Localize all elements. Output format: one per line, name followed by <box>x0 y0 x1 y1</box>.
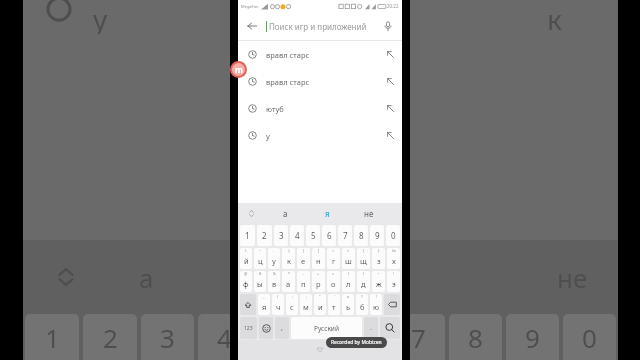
button[interactable]: ! <box>387 271 400 292</box>
button[interactable]: Shift <box>240 294 256 315</box>
staticText: вравл старс <box>266 50 310 60</box>
staticText: т <box>332 302 336 312</box>
button[interactable]: а <box>264 203 306 224</box>
staticText: 2 <box>262 230 267 241</box>
staticText: [ <box>303 248 305 253</box>
button[interactable]: ~ <box>254 248 266 269</box>
staticText: д <box>361 279 366 289</box>
button[interactable]: ! <box>370 294 382 315</box>
button[interactable]: 2 <box>257 225 272 246</box>
staticText: в <box>272 279 277 289</box>
staticText: Русский <box>314 324 339 333</box>
staticText: н <box>316 256 321 266</box>
staticText: й <box>244 256 249 266</box>
button[interactable]: & <box>268 271 280 292</box>
button[interactable]: Emoji <box>259 317 273 339</box>
button[interactable]: 8 <box>354 225 368 246</box>
button[interactable]: = <box>327 271 340 292</box>
staticText: я <box>262 302 267 312</box>
staticText: 5 <box>311 230 316 241</box>
button[interactable]: Search <box>380 317 400 339</box>
button[interactable]: 7 <box>338 225 352 246</box>
button[interactable]: | <box>282 248 295 269</box>
button[interactable]: вравл старс <box>238 41 402 68</box>
staticText: ю <box>373 302 379 312</box>
staticText: м <box>303 302 309 312</box>
button[interactable]: ) <box>357 271 370 292</box>
staticText: с <box>290 302 294 312</box>
button[interactable]: ' <box>328 294 340 315</box>
button[interactable]: 9 <box>370 225 384 246</box>
button[interactable]: ютуб <box>238 95 402 122</box>
staticText: б <box>360 302 365 312</box>
button[interactable]: вравл старс <box>238 68 402 95</box>
button[interactable]: - <box>268 248 280 269</box>
button[interactable]: } <box>372 248 385 269</box>
button[interactable]: . <box>364 317 378 339</box>
button[interactable]: " <box>314 294 326 315</box>
staticText: вравл старс <box>266 77 310 87</box>
button[interactable]: № <box>387 248 400 269</box>
button[interactable]: ] <box>312 248 325 269</box>
staticText: у <box>272 256 276 266</box>
button[interactable]: • <box>372 271 385 292</box>
staticText: " <box>319 294 321 299</box>
button[interactable]: + <box>312 271 325 292</box>
button[interactable]: 0 <box>386 225 400 246</box>
button[interactable]: Voice search <box>374 12 402 40</box>
staticText: и <box>318 302 323 312</box>
staticText: 9 <box>375 230 380 241</box>
button[interactable]: , <box>275 317 289 339</box>
button[interactable]: у <box>238 122 402 149</box>
button[interactable]: ( <box>342 271 355 292</box>
button[interactable]: @ <box>240 271 252 292</box>
button[interactable]: * <box>282 271 295 292</box>
button[interactable]: 4 <box>290 225 304 246</box>
button[interactable]: # <box>254 271 266 292</box>
button[interactable]: < <box>327 248 340 269</box>
button[interactable]: Back <box>310 340 330 360</box>
staticText: к <box>287 256 291 266</box>
staticText: ! <box>393 271 394 276</box>
button[interactable]: 1 <box>240 225 255 246</box>
staticText: , <box>281 323 283 333</box>
button[interactable]: Expand suggestions <box>238 203 264 224</box>
button[interactable]: - <box>297 271 310 292</box>
staticText: 8 <box>468 320 483 355</box>
staticText: ь <box>346 302 351 312</box>
button[interactable]: : <box>286 294 298 315</box>
button[interactable]: Backspace <box>384 294 400 315</box>
button[interactable]: 5 <box>306 225 320 246</box>
staticText: | <box>288 248 290 253</box>
button[interactable]: Back <box>238 12 266 40</box>
button[interactable]: не <box>348 203 390 224</box>
button[interactable]: я <box>306 203 348 224</box>
button[interactable]: _ <box>258 294 270 315</box>
staticText: < <box>332 248 335 253</box>
staticText: щ <box>360 256 367 266</box>
staticText: { <box>363 248 365 253</box>
staticText: е <box>301 256 306 266</box>
staticText: з <box>377 256 381 266</box>
staticText: ( <box>348 271 350 276</box>
staticText: ? <box>361 294 363 299</box>
button[interactable]: [ <box>297 248 310 269</box>
button[interactable]: > <box>342 248 355 269</box>
button[interactable]: ? <box>356 294 368 315</box>
staticText: 1 <box>245 230 250 241</box>
button[interactable]: { <box>357 248 370 269</box>
button[interactable]: Mobizen <box>230 61 247 78</box>
staticText: ы <box>257 279 263 289</box>
button[interactable]: Русский <box>291 317 362 339</box>
staticText: > <box>347 248 350 253</box>
button[interactable]: 6 <box>322 225 336 246</box>
button[interactable]: 123 <box>240 317 257 339</box>
button[interactable]: ; <box>300 294 312 315</box>
button[interactable]: \ <box>240 248 252 269</box>
staticText: не <box>364 208 374 219</box>
button[interactable]: ъ <box>342 294 354 315</box>
button[interactable]: / <box>272 294 284 315</box>
staticText: - <box>273 248 275 253</box>
button[interactable]: 3 <box>274 225 288 246</box>
staticText: = <box>332 271 335 276</box>
